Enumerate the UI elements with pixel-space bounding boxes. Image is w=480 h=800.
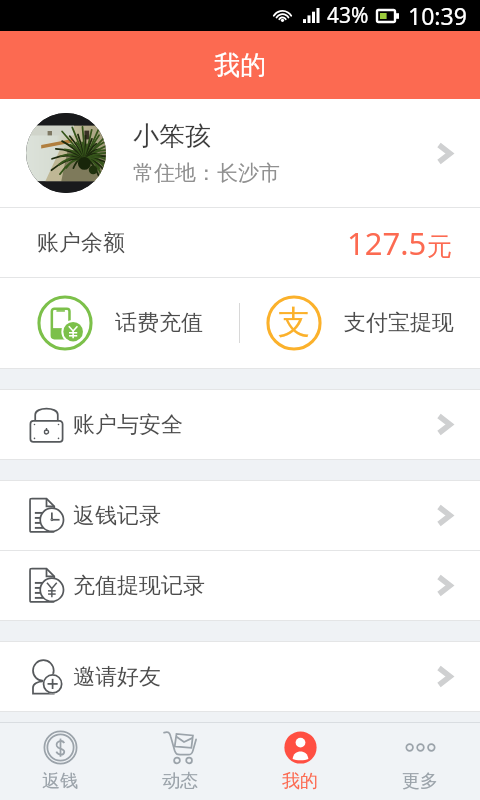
staticText: 支 — [278, 302, 310, 342]
staticText: 支付宝提现 — [344, 309, 454, 337]
staticText: 邀请好友 — [73, 663, 161, 691]
staticText: 10:39 — [408, 0, 467, 31]
staticText: 常住地：长沙市 — [133, 160, 280, 186]
staticText: 账户余额 — [37, 229, 125, 257]
staticText: 127.5 — [347, 222, 427, 264]
button[interactable]: 返钱 — [0, 723, 120, 800]
staticText: 充值提现记录 — [73, 572, 205, 600]
button[interactable]: 更多 — [360, 723, 480, 800]
button[interactable]: 邀请好友 — [0, 642, 480, 711]
button[interactable]: 充值提现记录 — [0, 551, 480, 620]
staticText: 更多 — [402, 770, 438, 793]
button[interactable]: 支 — [240, 278, 480, 368]
staticText: 返钱记录 — [73, 502, 161, 530]
button[interactable]: 我的 — [240, 723, 360, 800]
staticText: 43% — [327, 1, 369, 30]
staticText: 我的 — [282, 770, 318, 793]
staticText: 返钱 — [42, 770, 78, 793]
button[interactable]: 返钱记录 — [0, 481, 480, 550]
button[interactable]: 小笨孩 — [0, 99, 480, 207]
button[interactable]: 账户与安全 — [0, 390, 480, 459]
staticText: 账户与安全 — [73, 411, 183, 439]
staticText: 我的 — [214, 49, 266, 82]
staticText: 动态 — [162, 770, 198, 793]
button[interactable]: 动态 — [120, 723, 240, 800]
staticText: 元 — [427, 231, 452, 262]
button[interactable]: 话费充值 — [0, 278, 239, 368]
staticText: 小笨孩 — [133, 120, 211, 153]
staticText: 话费充值 — [115, 309, 203, 337]
